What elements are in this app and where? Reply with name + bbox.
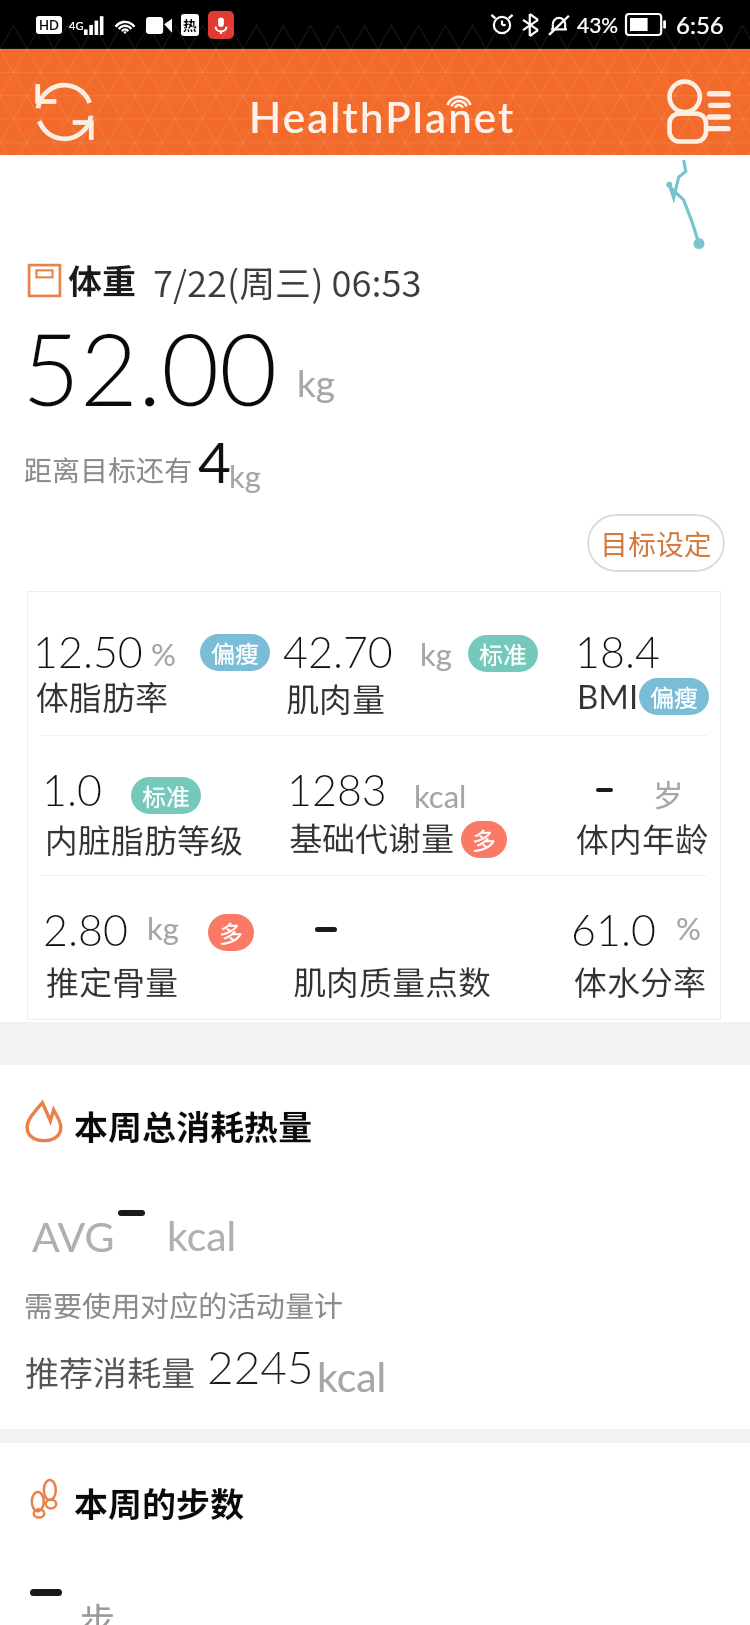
staticText: kg [229,457,261,494]
staticText: 基础代谢量 [289,813,454,861]
staticText: 内脏脂肪等级 [45,815,243,863]
staticText: 步 [80,1592,116,1625]
staticText: kg [297,360,336,404]
staticText: 本周的步数 [74,1478,244,1527]
staticText: 7/22(周三) 06:53 [153,255,422,307]
staticText: 4 [198,427,232,495]
staticText: 体脂肪率 [36,672,168,720]
staticText: 4G [69,19,84,32]
staticText: 多 [219,915,243,950]
staticText: 体水分率 [574,957,706,1005]
staticText: kg [147,909,179,946]
staticText: 距离目标还有 [24,449,193,490]
staticText: 偏瘦 [650,679,698,714]
staticText: 52.00 [22,307,278,427]
staticText: 1283 [287,764,387,816]
staticText: 2.80 [43,904,128,956]
staticText: AVG [32,1212,115,1261]
staticText: 6:56 [676,10,724,39]
staticText: 体内年龄 [576,814,708,862]
staticText: 2245 [207,1339,314,1394]
staticText: 18.4 [575,626,660,678]
staticText: 肌肉质量点数 [293,957,491,1005]
staticText: 岁 [653,771,684,816]
staticText: 需要使用对应的活动量计 [24,1283,344,1325]
staticText: 目标设定 [600,523,713,564]
staticText: 12.50 [33,626,143,678]
button[interactable]: Refresh [20,70,110,134]
button[interactable]: Profile [652,69,740,137]
staticText: kg [420,635,452,672]
staticText: 43% [577,12,619,37]
staticText: 多 [472,822,496,857]
staticText: 42.70 [283,626,393,678]
staticText: 标准 [142,778,190,813]
button[interactable]: 目标设定 [587,514,725,572]
staticText: 推定骨量 [46,957,178,1005]
staticText: 61.0 [571,904,656,956]
staticText: % [676,909,701,946]
staticText: HD [39,17,59,33]
staticText: 1.0 [42,764,102,816]
staticText: 肌肉量 [286,674,385,722]
staticText: 热 [183,15,197,35]
staticText: 体重 [68,255,136,304]
staticText: 偏瘦 [211,635,259,670]
staticText: % [151,635,176,672]
staticText: 推荐消耗量 [25,1347,195,1396]
staticText: kcal [317,1352,387,1401]
staticText: 本周总消耗热量 [74,1101,312,1150]
staticText: kcal [414,777,467,814]
staticText: 标准 [479,636,527,671]
staticText: HealthPlanet [249,92,516,142]
staticText: BMI [577,676,639,716]
staticText: kcal [167,1211,237,1260]
